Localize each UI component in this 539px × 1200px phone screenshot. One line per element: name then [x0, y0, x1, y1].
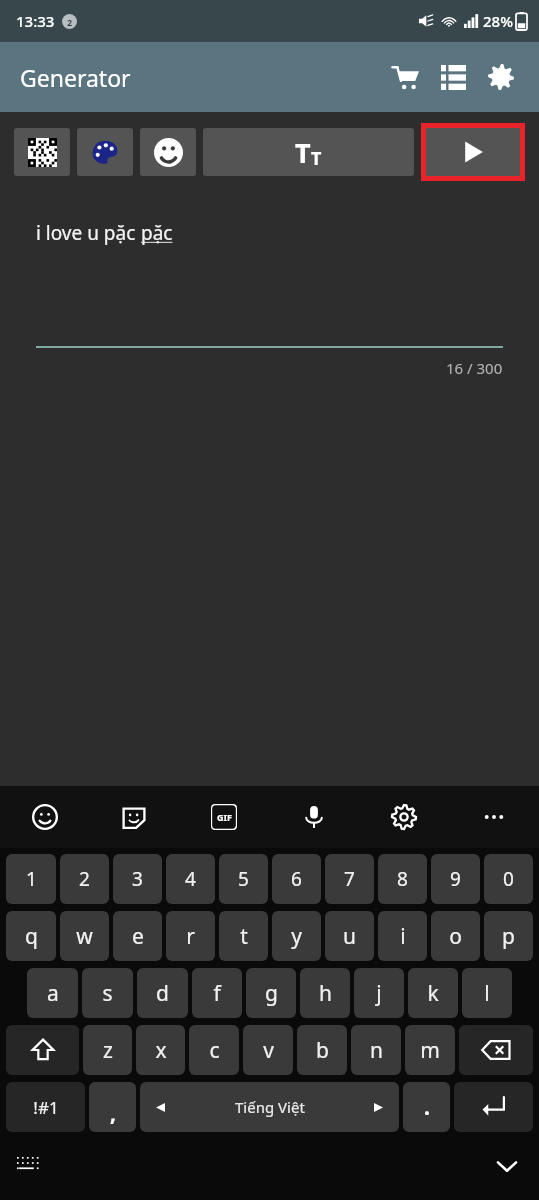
staticText: n — [370, 1036, 383, 1065]
button[interactable]: More — [449, 786, 539, 848]
button[interactable]: 2 — [60, 854, 109, 904]
staticText: i — [400, 922, 406, 951]
staticText: x — [155, 1036, 167, 1065]
staticText: 8 — [397, 866, 408, 892]
staticText: . — [424, 1093, 430, 1122]
button[interactable]: Tool — [203, 128, 414, 176]
staticText: 1 — [26, 866, 37, 892]
button[interactable]: 5 — [219, 854, 268, 904]
button[interactable]: 7 — [325, 854, 374, 904]
staticText: p — [502, 922, 515, 951]
button[interactable]: d — [137, 968, 188, 1018]
staticText: pặc — [141, 220, 173, 246]
button[interactable]: Emoji — [0, 786, 89, 848]
staticText: v — [263, 1036, 274, 1065]
staticText: !#1 — [33, 1096, 59, 1119]
staticText: Tiếng Việt — [235, 1097, 305, 1117]
staticText: h — [319, 979, 332, 1008]
staticText: a — [47, 979, 59, 1008]
button[interactable]: Shift — [6, 1025, 79, 1075]
staticText: g — [265, 979, 278, 1008]
button[interactable]: s — [82, 968, 133, 1018]
button[interactable]: Settings — [359, 786, 449, 848]
button[interactable]: w — [60, 911, 109, 961]
button[interactable]: v — [243, 1025, 293, 1075]
button[interactable]: Tool — [77, 128, 133, 176]
button[interactable]: q — [6, 911, 56, 961]
button[interactable]: z — [83, 1025, 132, 1075]
button[interactable]: l — [462, 968, 512, 1018]
staticText: t — [240, 922, 248, 951]
staticText: r — [186, 922, 195, 951]
staticText: 28% — [483, 11, 513, 31]
button[interactable]: 6 — [272, 854, 321, 904]
button[interactable]: List — [429, 53, 477, 101]
button[interactable]: i — [378, 911, 427, 961]
staticText: b — [316, 1036, 329, 1065]
button[interactable]: 3 — [113, 854, 162, 904]
button[interactable]: Tool — [14, 128, 70, 176]
staticText: q — [25, 922, 38, 951]
button[interactable]: 0 — [484, 854, 533, 904]
button[interactable]: , — [89, 1082, 136, 1132]
button[interactable]: Tool — [140, 128, 196, 176]
button[interactable]: Voice — [269, 786, 359, 848]
staticText: 5 — [238, 866, 249, 892]
staticText: u — [343, 922, 356, 951]
button[interactable]: Enter — [454, 1082, 533, 1132]
staticText: w — [76, 922, 93, 951]
button[interactable]: . — [403, 1082, 450, 1132]
staticText: l — [484, 979, 490, 1008]
button[interactable]: n — [351, 1025, 401, 1075]
button[interactable]: r — [166, 911, 215, 961]
staticText: 7 — [344, 866, 355, 892]
button[interactable]: 8 — [378, 854, 427, 904]
staticText: 13:33 — [16, 11, 55, 31]
button[interactable]: f — [192, 968, 242, 1018]
staticText: m — [420, 1036, 440, 1065]
button[interactable]: x — [136, 1025, 185, 1075]
staticText: o — [449, 922, 462, 951]
button[interactable]: y — [272, 911, 321, 961]
button[interactable]: Backspace — [459, 1025, 533, 1075]
button[interactable]: m — [405, 1025, 455, 1075]
button[interactable]: Space Tiếng Việt — [140, 1082, 399, 1132]
button[interactable]: Keyboard layout — [8, 1144, 52, 1188]
button[interactable]: !#1 — [6, 1082, 85, 1132]
button[interactable]: g — [246, 968, 296, 1018]
button[interactable]: a — [27, 968, 78, 1018]
staticText: f — [213, 979, 221, 1008]
staticText: 3 — [132, 866, 143, 892]
staticText: 0 — [503, 866, 514, 892]
staticText: 2 — [67, 16, 73, 28]
staticText: GIF — [217, 811, 232, 823]
button[interactable]: Sticker — [89, 786, 179, 848]
button[interactable]: Shop — [381, 53, 429, 101]
staticText: e — [132, 922, 144, 951]
staticText: T — [295, 134, 311, 171]
staticText: k — [427, 979, 439, 1008]
button[interactable]: t — [219, 911, 268, 961]
button[interactable]: o — [431, 911, 480, 961]
button[interactable]: 9 — [431, 854, 480, 904]
button[interactable]: Settings — [477, 53, 525, 101]
button[interactable]: Play — [426, 128, 520, 176]
button[interactable]: k — [408, 968, 458, 1018]
staticText: 2 — [79, 866, 90, 892]
staticText: , — [110, 1099, 116, 1128]
button[interactable]: c — [189, 1025, 239, 1075]
button[interactable]: e — [113, 911, 162, 961]
button[interactable]: 1 — [6, 854, 56, 904]
button[interactable]: h — [300, 968, 350, 1018]
button[interactable]: Hide keyboard — [485, 1144, 529, 1188]
button[interactable]: p — [484, 911, 533, 961]
button[interactable]: GIF — [179, 786, 269, 848]
button[interactable]: b — [297, 1025, 347, 1075]
button[interactable]: 4 — [166, 854, 215, 904]
staticText: Generator — [20, 62, 131, 93]
staticText: d — [156, 979, 169, 1008]
button[interactable]: j — [354, 968, 404, 1018]
button[interactable]: u — [325, 911, 374, 961]
staticText: 9 — [450, 866, 461, 892]
staticText: y — [291, 922, 302, 951]
